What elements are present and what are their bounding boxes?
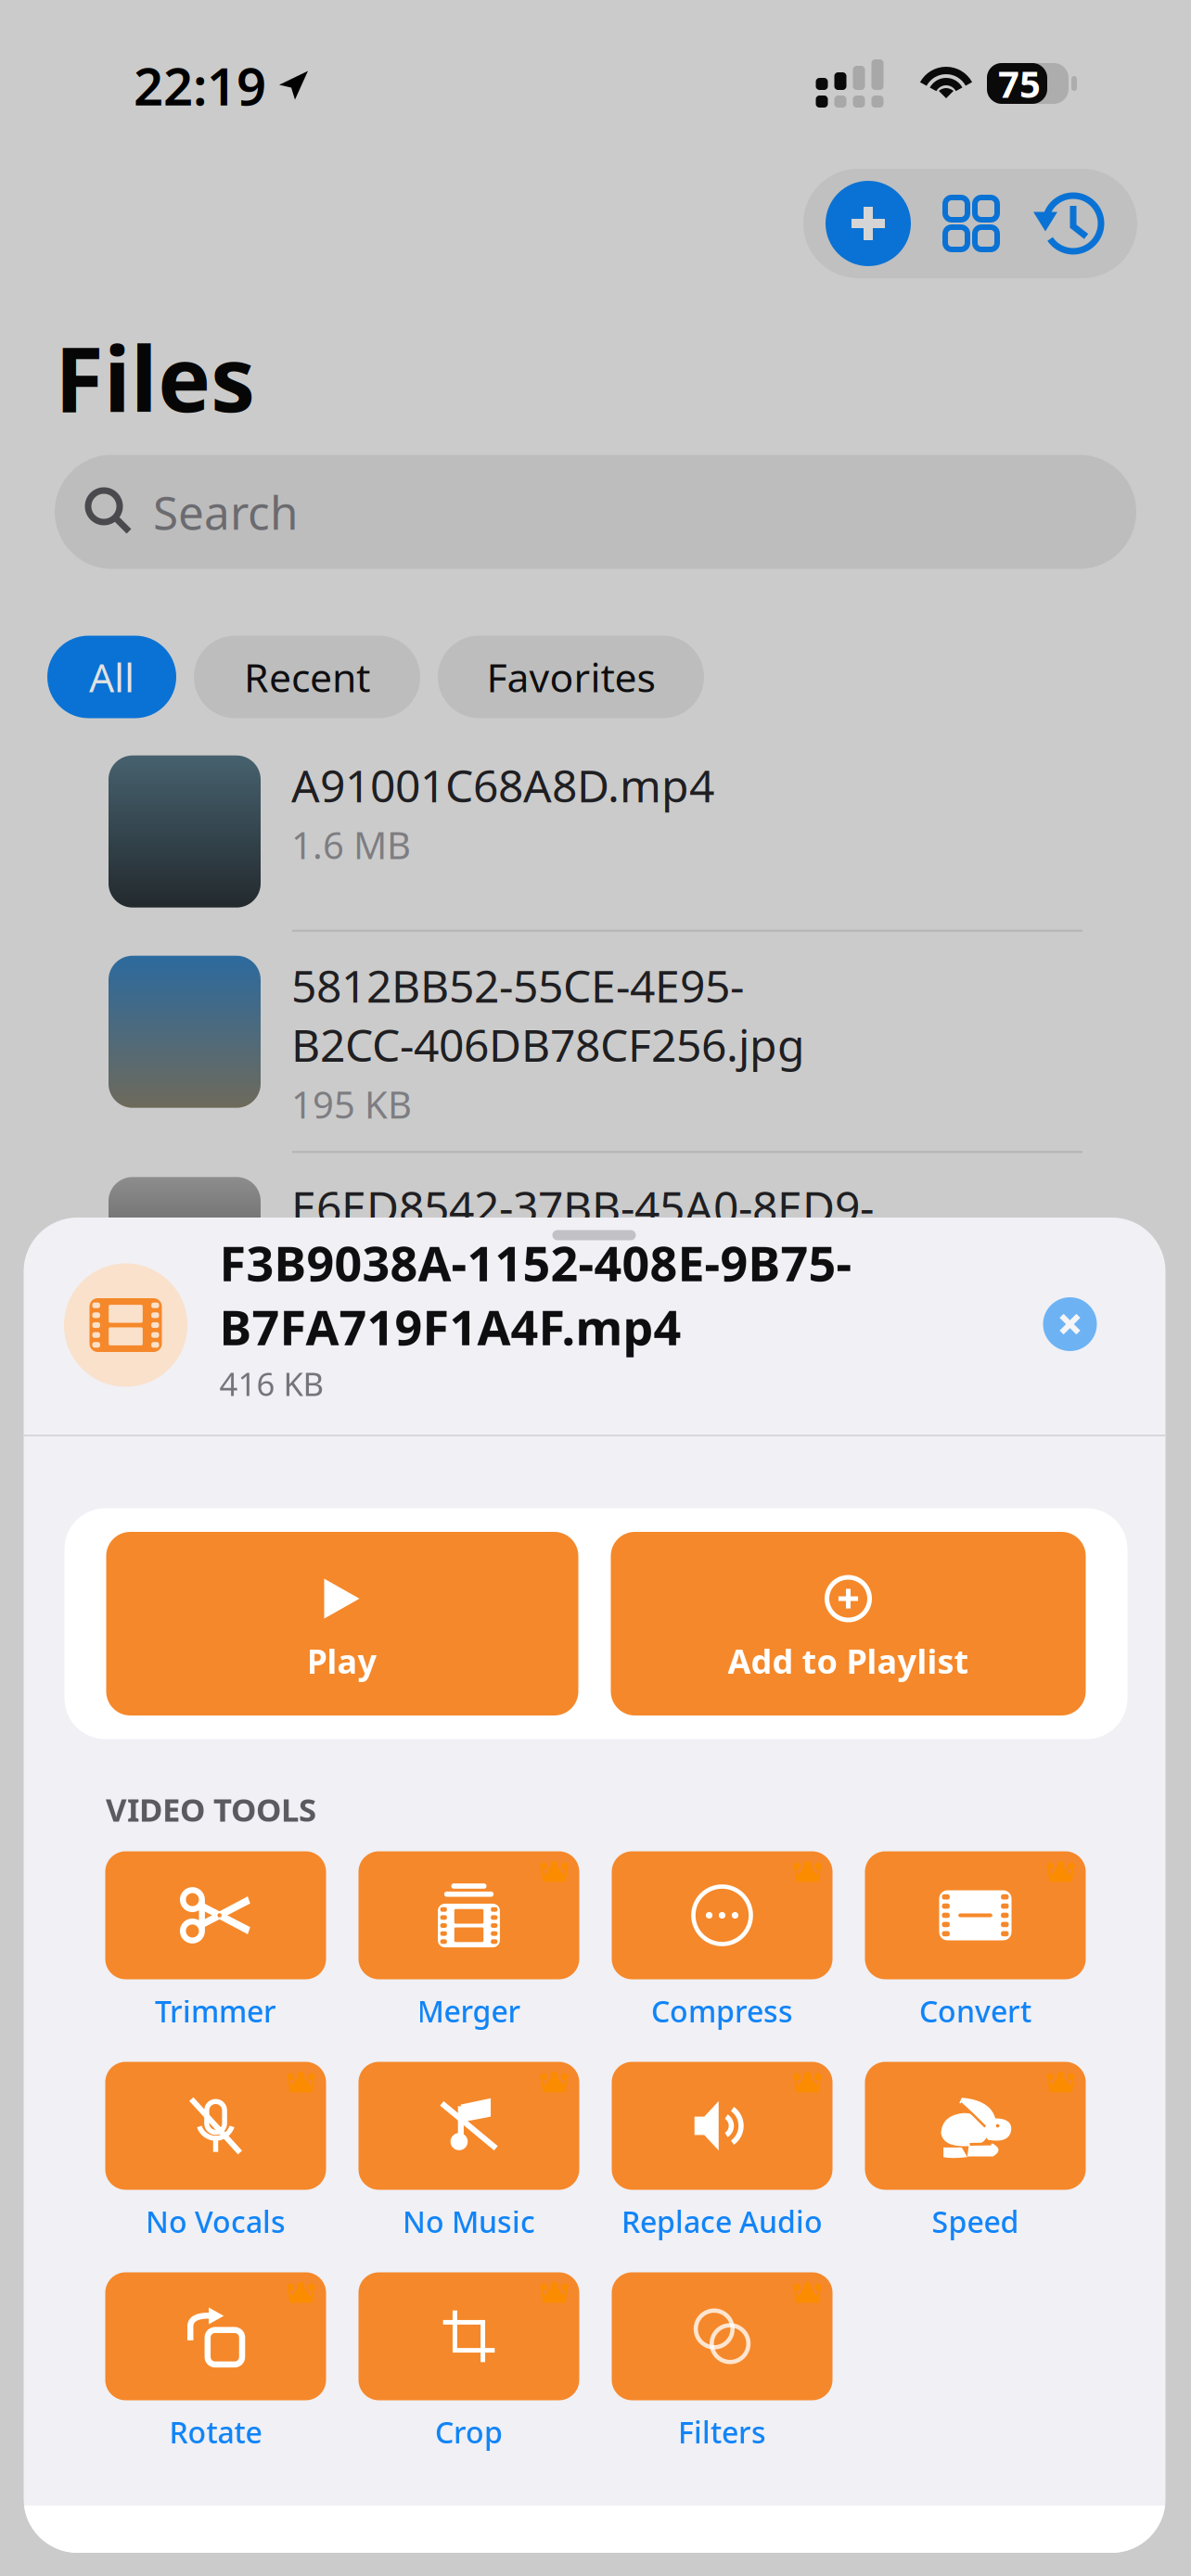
staticText: Merger bbox=[417, 1991, 521, 2031]
staticText: 1.6 MB bbox=[291, 820, 411, 869]
button[interactable]: Rotate bbox=[105, 2272, 326, 2483]
staticText: 22:19 bbox=[134, 51, 266, 120]
staticText: Favorites bbox=[487, 651, 655, 703]
staticText: Files bbox=[55, 318, 255, 437]
button[interactable]: No Vocals bbox=[105, 2062, 326, 2272]
button[interactable]: Merger bbox=[359, 1851, 579, 2062]
staticText: A91001C68A8D.mp4 bbox=[291, 755, 714, 815]
staticText: Crop bbox=[435, 2412, 503, 2452]
button[interactable]: Favorites bbox=[438, 636, 704, 718]
button[interactable]: Convert bbox=[865, 1851, 1086, 2062]
staticText: Add to Playlist bbox=[728, 1639, 969, 1683]
button[interactable]: Recent bbox=[194, 636, 420, 718]
button[interactable]: Filters bbox=[612, 2272, 832, 2483]
staticText: Speed bbox=[932, 2202, 1019, 2241]
staticText: Recent bbox=[244, 651, 370, 703]
staticText: F3B9038A-1152-408E-9B75- B7FA719F1A4F.mp… bbox=[219, 1230, 852, 1358]
staticText: All bbox=[89, 651, 134, 703]
button[interactable]: Replace Audio bbox=[612, 2062, 832, 2272]
button[interactable]: Speed bbox=[865, 2062, 1086, 2272]
staticText: Search bbox=[153, 481, 298, 542]
staticText: Play bbox=[307, 1639, 377, 1683]
button[interactable]: Add bbox=[816, 175, 920, 272]
button[interactable]: No Music bbox=[359, 2062, 579, 2272]
staticText: Convert bbox=[919, 1991, 1031, 2031]
button[interactable]: Compress bbox=[612, 1851, 832, 2062]
staticText: 75 bbox=[998, 59, 1041, 108]
button[interactable]: Crop bbox=[359, 2272, 579, 2483]
button[interactable]: Add to Playlist bbox=[611, 1532, 1086, 1715]
staticText: 5812BB52-55CE-4E95- B2CC-406DB78CF256.jp… bbox=[291, 956, 805, 1074]
staticText: Filters bbox=[678, 2412, 766, 2452]
staticText: 195 KB bbox=[291, 1080, 412, 1129]
staticText: No Music bbox=[403, 2202, 535, 2241]
staticText: Trimmer bbox=[155, 1991, 276, 2031]
staticText: VIDEO TOOLS bbox=[106, 1788, 316, 1830]
button[interactable]: Trimmer bbox=[105, 1851, 326, 2062]
staticText: 416 KB bbox=[219, 1362, 324, 1405]
staticText: E6ED8542-37BB-45A0-8ED9- bbox=[291, 1177, 874, 1236]
staticText: Compress bbox=[651, 1991, 793, 2031]
staticText: Replace Audio bbox=[621, 2202, 823, 2241]
button[interactable]: Grid view bbox=[920, 175, 1022, 272]
button[interactable]: Play bbox=[106, 1532, 578, 1715]
button[interactable]: History bbox=[1022, 175, 1124, 272]
staticText: No Vocals bbox=[146, 2202, 286, 2241]
button[interactable]: Close bbox=[1031, 1285, 1109, 1363]
button[interactable]: All bbox=[47, 636, 176, 718]
staticText: Rotate bbox=[169, 2412, 262, 2452]
